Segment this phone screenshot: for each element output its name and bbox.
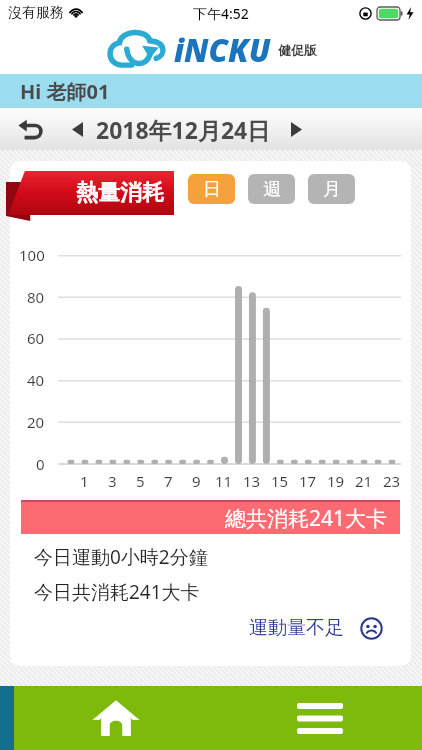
- staticText: 23: [383, 471, 401, 491]
- staticText: 健促版: [278, 42, 317, 58]
- staticText: 80: [27, 287, 45, 307]
- button[interactable]: 週: [248, 174, 295, 204]
- staticText: 15: [271, 471, 289, 491]
- staticText: 沒有服務: [8, 4, 64, 22]
- staticText: 11: [215, 471, 233, 491]
- button[interactable]: Menu: [218, 686, 422, 750]
- button[interactable]: Next day: [281, 114, 311, 144]
- staticText: Hi 老師01: [20, 78, 110, 105]
- button[interactable]: Back: [12, 111, 48, 147]
- staticText: 5: [136, 471, 145, 491]
- staticText: 2018年12月24日: [96, 114, 271, 145]
- staticText: 日: [203, 178, 221, 201]
- staticText: 今日共消耗241大卡: [34, 579, 200, 605]
- staticText: 週: [263, 178, 281, 201]
- staticText: 7: [164, 471, 173, 491]
- staticText: 9: [192, 471, 201, 491]
- staticText: 17: [299, 471, 317, 491]
- staticText: 熱量消耗: [76, 179, 164, 207]
- staticText: 13: [243, 471, 261, 491]
- staticText: 運動量不足: [249, 616, 344, 640]
- staticText: 21: [355, 471, 373, 491]
- button[interactable]: 熱量消耗: [6, 171, 174, 221]
- button[interactable]: 總共消耗241大卡: [21, 502, 400, 534]
- staticText: 100: [19, 245, 45, 265]
- staticText: 0: [36, 454, 45, 474]
- button[interactable]: 日: [188, 174, 235, 204]
- button[interactable]: 月: [308, 174, 355, 204]
- staticText: 20: [27, 412, 45, 432]
- staticText: 3: [108, 471, 117, 491]
- button[interactable]: 運動量不足: [249, 616, 344, 640]
- staticText: 40: [27, 370, 45, 390]
- button[interactable]: Home: [14, 686, 218, 750]
- staticText: 60: [27, 328, 45, 348]
- staticText: 總共消耗241大卡: [225, 504, 388, 533]
- staticText: 今日運動0小時2分鐘: [34, 544, 208, 570]
- button[interactable]: Previous day: [62, 114, 92, 144]
- staticText: 1: [80, 471, 89, 491]
- other: Sad face: [360, 617, 383, 640]
- staticText: 月: [323, 178, 341, 201]
- staticText: 下午4:52: [193, 4, 249, 23]
- staticText: 19: [327, 471, 345, 491]
- button[interactable]: 2018年12月24日: [96, 114, 271, 145]
- staticText: iNCKU: [174, 29, 271, 71]
